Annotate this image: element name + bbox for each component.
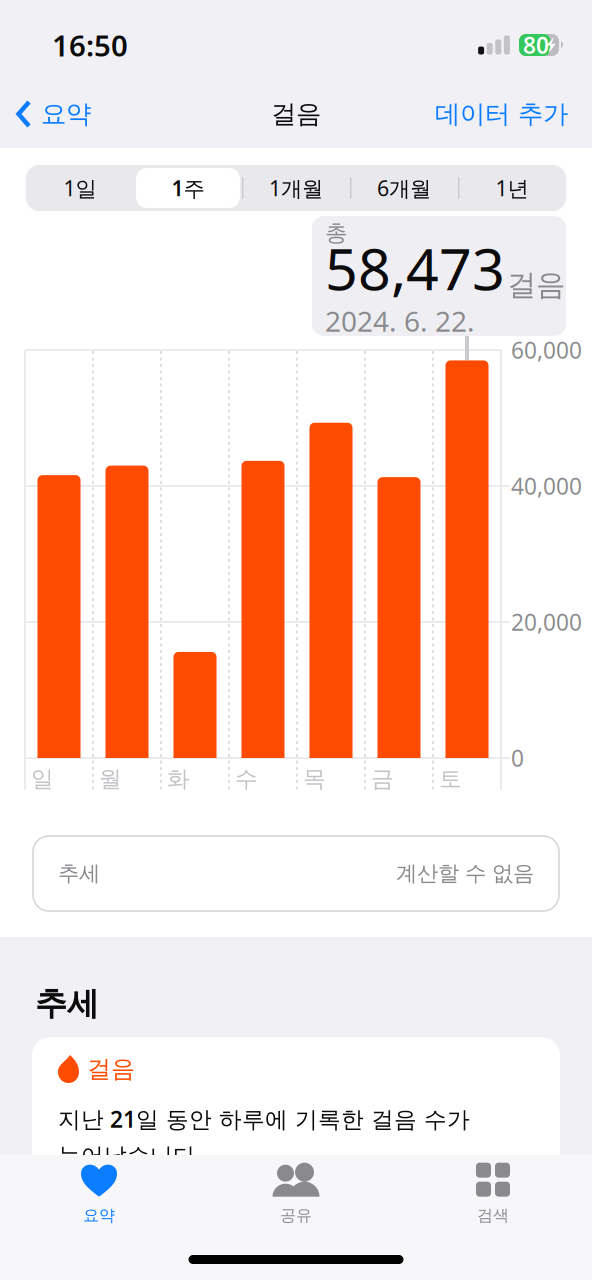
staticText: 걸음 (507, 267, 565, 303)
staticText: 토 (439, 765, 462, 793)
button[interactable]: 공유 (197, 1155, 394, 1233)
staticText: 40,000 (511, 471, 582, 501)
staticText: 월 (99, 765, 122, 793)
staticText: 늘어났습니다. (58, 1140, 202, 1170)
staticText: 1년 (495, 174, 528, 202)
staticText: 6개월 (377, 174, 431, 202)
staticText: 요약 (83, 1206, 115, 1225)
staticText: 검색 (477, 1206, 509, 1225)
button[interactable]: 1일 (26, 165, 134, 211)
staticText: 0 (511, 743, 524, 773)
staticText: 추세 (58, 860, 100, 887)
staticText: 공유 (280, 1206, 312, 1225)
staticText: 요약 (41, 98, 91, 129)
button[interactable]: 요약 (0, 1155, 197, 1233)
button[interactable]: 추세 (33, 836, 559, 911)
staticText: 일 (31, 765, 54, 793)
staticText: 걸음 (87, 1054, 135, 1084)
staticText: 화 (167, 765, 190, 793)
staticText: 데이터 추가 (435, 98, 568, 129)
button[interactable]: 1년 (458, 165, 566, 211)
staticText: 금 (371, 765, 394, 793)
staticText: 60,000 (511, 335, 582, 365)
staticText: 1주 (171, 174, 204, 202)
staticText: 추세 (35, 984, 99, 1023)
staticText: 1일 (63, 174, 96, 202)
staticText: 수 (235, 765, 258, 793)
staticText: 걸음 (271, 98, 321, 129)
staticText: 총 (325, 219, 348, 247)
button[interactable]: 요약 (0, 88, 101, 139)
staticText: 2024. 6. 22. (325, 302, 475, 340)
staticText: 지난 21일 동안 하루에 기록한 걸음 수가 (58, 1104, 470, 1134)
staticText: 1개월 (269, 174, 323, 202)
button[interactable]: 검색 (394, 1155, 591, 1233)
staticText: 계산할 수 없음 (396, 860, 534, 887)
staticText: 80 (523, 30, 549, 60)
staticText: 20,000 (511, 607, 582, 637)
staticText: 16:50 (52, 25, 128, 64)
staticText: 58,473 (325, 230, 505, 306)
staticText: 목 (303, 765, 326, 793)
button[interactable]: 데이터 추가 (425, 88, 592, 139)
button[interactable]: 1개월 (242, 165, 350, 211)
button[interactable]: 1주 (134, 165, 242, 211)
button[interactable]: 6개월 (350, 165, 458, 211)
